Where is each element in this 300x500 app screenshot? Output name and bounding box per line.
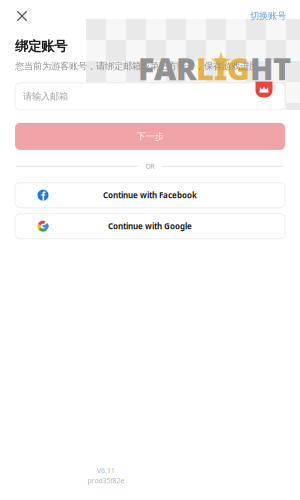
- staticText: prod35f82e: [87, 476, 124, 485]
- staticText: 下一步: [136, 131, 163, 142]
- staticText: V6.11: [97, 466, 115, 475]
- button[interactable]: 下一步: [15, 123, 285, 150]
- button[interactable]: Continue with Facebook: [15, 183, 285, 208]
- staticText: OR: [145, 162, 154, 171]
- staticText: Continue with Facebook: [103, 190, 197, 200]
- staticText: 您当前为游客账号，请绑定邮箱或第三方账号，保存游戏进度: [15, 60, 258, 72]
- button[interactable]: Close: [11, 5, 33, 27]
- staticText: 绑定账号: [15, 38, 67, 54]
- staticText: LIG: [196, 48, 250, 89]
- staticText: FAR: [138, 48, 197, 89]
- staticText: 请输入邮箱: [23, 91, 68, 102]
- button[interactable]: Continue with Google: [15, 214, 285, 239]
- staticText: HT: [250, 48, 291, 89]
- staticText: Continue with Google: [108, 221, 192, 231]
- button[interactable]: 切换账号: [247, 6, 289, 26]
- staticText: 切换账号: [250, 10, 286, 22]
